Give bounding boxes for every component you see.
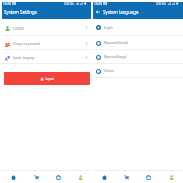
button[interactable]: Profile [160,171,183,183]
button[interactable]: Home [2,171,25,183]
staticText: Change my password [13,42,41,46]
staticText: System Settings [4,9,37,15]
staticText: Myanmar(Unicode) [104,41,129,45]
button[interactable]: Home [93,171,115,183]
button[interactable]: Back [95,9,101,15]
button[interactable]: Change my password [2,36,91,50]
button[interactable]: Myanmar(Unicode) [93,36,183,50]
button[interactable]: Profile [69,171,91,183]
staticText: CU30001 [13,27,25,31]
staticText: Chinese [104,69,115,73]
button[interactable]: Cart [115,171,137,183]
staticText: English [104,26,114,30]
staticText: 0.00 B/s [64,2,75,5]
staticText: 12:38 PM [94,2,108,5]
button[interactable]: Orders [137,171,160,183]
button[interactable]: CU30001 [2,19,91,36]
staticText: System language [103,9,139,15]
button[interactable]: English [93,19,183,36]
button[interactable]: Chinese [93,64,183,78]
staticText: 0.00 B/s [156,2,167,5]
button[interactable]: Cart [25,171,47,183]
staticText: 12:38 PM [3,2,17,5]
staticText: System language [13,56,35,60]
button[interactable]: System language [2,50,91,64]
button[interactable]: Myanmar(Zawgyi) [93,50,183,64]
button[interactable]: Orders [47,171,69,183]
staticText: Myanmar(Zawgyi) [104,55,127,59]
button[interactable]: Logout [4,72,90,85]
staticText: Logout [45,77,54,81]
